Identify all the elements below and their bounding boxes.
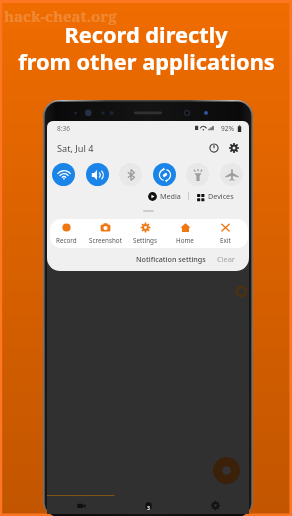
staticText: Sat, Jul 4	[57, 142, 94, 155]
staticText: Media	[160, 191, 181, 201]
button[interactable]: Wi-Fi	[52, 163, 75, 186]
staticText: from other applications	[18, 47, 275, 77]
staticText: 8:36	[57, 124, 71, 133]
button[interactable]: Record	[50, 219, 248, 248]
button[interactable]: Devices	[196, 191, 234, 201]
button[interactable]: Settings	[182, 496, 249, 514]
button[interactable]: Notification settings	[136, 254, 206, 264]
staticText: Record	[56, 236, 77, 245]
staticText: Home	[176, 236, 194, 245]
button[interactable]: Screenshot	[86, 219, 125, 248]
button[interactable]: Settings	[125, 219, 165, 248]
button[interactable]: Screenshots	[115, 496, 182, 514]
staticText: Clear	[217, 254, 235, 264]
staticText: Devices	[208, 191, 234, 201]
button[interactable]: Exit	[205, 219, 245, 248]
button[interactable]: Clear	[217, 254, 235, 264]
button[interactable]: Auto rotate	[153, 163, 176, 186]
button[interactable]: Home	[165, 219, 205, 248]
button[interactable]: Airplane mode	[220, 163, 243, 186]
button[interactable]: Record	[213, 457, 240, 484]
button[interactable]: Settings	[227, 141, 241, 155]
staticText: Screenshot	[89, 236, 122, 245]
staticText: 3	[147, 504, 150, 511]
staticText: Settings	[133, 236, 157, 245]
button[interactable]: Media	[148, 191, 181, 201]
staticText: Exit	[220, 236, 231, 245]
button[interactable]: Power off	[207, 141, 221, 155]
button[interactable]: Bluetooth	[119, 163, 142, 186]
button[interactable]: Videos	[47, 496, 115, 514]
staticText: hack-cheat.org	[4, 6, 117, 26]
staticText: Notification settings	[136, 254, 206, 264]
button[interactable]: Sound	[86, 163, 109, 186]
button[interactable]: Record	[50, 219, 86, 248]
staticText: 92%	[221, 124, 235, 133]
button[interactable]: Flashlight	[186, 163, 209, 186]
staticText: Record directly	[64, 20, 228, 50]
